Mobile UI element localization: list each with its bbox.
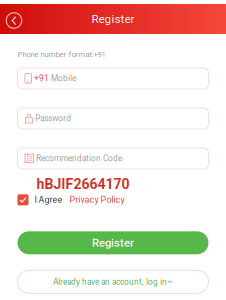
- staticText: Register: [91, 12, 134, 26]
- staticText: I Agree: [34, 195, 62, 205]
- button[interactable]: Already have an account, log in~: [17, 270, 208, 293]
- staticText: Mobile: [51, 74, 76, 83]
- staticText: Phone number format:+91: [17, 50, 105, 59]
- staticText: hBJlF2664170: [36, 176, 129, 192]
- staticText: Register: [92, 236, 134, 249]
- button[interactable]: Register: [17, 231, 208, 254]
- button[interactable]: I Agree: [17, 194, 62, 205]
- button[interactable]: Privacy Policy: [69, 195, 124, 205]
- staticText: Recommendation Code: [36, 154, 122, 163]
- staticText: Password: [35, 114, 71, 123]
- staticText: Privacy Policy: [69, 195, 124, 205]
- staticText: Already have an account, log in~: [53, 277, 173, 287]
- staticText: +91: [34, 74, 49, 83]
- button[interactable]: Back: [0, 4, 28, 34]
